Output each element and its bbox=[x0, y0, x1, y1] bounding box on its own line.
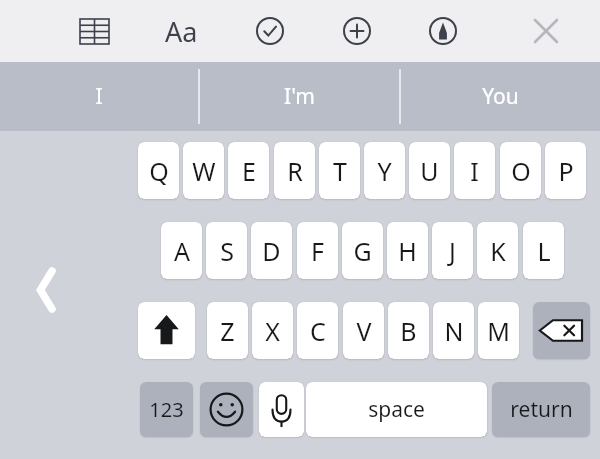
button[interactable]: Close bbox=[522, 13, 570, 49]
button[interactable]: Add bbox=[333, 13, 381, 49]
button[interactable]: E bbox=[228, 142, 269, 199]
staticText: O bbox=[511, 154, 531, 188]
button[interactable]: T bbox=[319, 142, 360, 199]
button[interactable]: Insert table bbox=[68, 13, 120, 49]
staticText: 123 bbox=[149, 396, 184, 423]
staticText: Q bbox=[149, 154, 169, 188]
staticText: I bbox=[470, 154, 479, 188]
button[interactable]: U bbox=[409, 142, 450, 199]
staticText: L bbox=[537, 234, 551, 268]
button[interactable]: I'm bbox=[200, 62, 399, 131]
staticText: I'm bbox=[284, 82, 315, 111]
button[interactable]: Z bbox=[207, 302, 248, 359]
button[interactable]: Dictate bbox=[259, 382, 304, 437]
staticText: N bbox=[444, 314, 464, 348]
button[interactable]: I bbox=[454, 142, 495, 199]
button[interactable]: D bbox=[251, 222, 292, 279]
button[interactable]: L bbox=[523, 222, 564, 279]
button[interactable]: I bbox=[0, 62, 198, 131]
button[interactable]: Backspace bbox=[533, 302, 590, 359]
button[interactable]: 123 bbox=[140, 382, 193, 437]
staticText: F bbox=[311, 234, 324, 268]
button[interactable]: Shift bbox=[138, 302, 195, 359]
staticText: E bbox=[242, 154, 256, 188]
button[interactable]: A bbox=[161, 222, 202, 279]
staticText: Y bbox=[377, 154, 392, 188]
button[interactable]: Done bbox=[246, 13, 294, 49]
staticText: S bbox=[220, 234, 234, 268]
staticText: K bbox=[490, 234, 506, 268]
staticText: A bbox=[174, 234, 190, 268]
button[interactable]: P bbox=[545, 142, 586, 199]
button[interactable]: Y bbox=[364, 142, 405, 199]
button[interactable]: space bbox=[306, 382, 487, 437]
button[interactable]: Collapse keyboard bbox=[24, 257, 68, 323]
staticText: M bbox=[487, 314, 510, 348]
staticText: I bbox=[95, 82, 103, 111]
staticText: P bbox=[558, 154, 574, 188]
staticText: H bbox=[398, 234, 417, 268]
button[interactable]: O bbox=[500, 142, 541, 199]
staticText: C bbox=[310, 314, 326, 348]
button[interactable]: X bbox=[252, 302, 293, 359]
staticText: R bbox=[287, 154, 303, 188]
staticText: You bbox=[482, 82, 519, 111]
staticText: return bbox=[510, 395, 573, 424]
button[interactable]: Q bbox=[138, 142, 179, 199]
button[interactable]: Aa bbox=[152, 13, 210, 49]
button[interactable]: V bbox=[343, 302, 384, 359]
button[interactable]: Markup bbox=[419, 13, 467, 49]
button[interactable]: return bbox=[492, 382, 590, 437]
button[interactable]: Emoji bbox=[200, 382, 253, 437]
button[interactable]: R bbox=[274, 142, 315, 199]
button[interactable]: J bbox=[432, 222, 473, 279]
button[interactable]: G bbox=[342, 222, 383, 279]
button[interactable]: C bbox=[297, 302, 338, 359]
button[interactable]: W bbox=[183, 142, 224, 199]
button[interactable]: You bbox=[401, 62, 600, 131]
button[interactable]: H bbox=[387, 222, 428, 279]
button[interactable]: M bbox=[478, 302, 519, 359]
staticText: Aa bbox=[165, 13, 198, 49]
button[interactable]: F bbox=[297, 222, 338, 279]
staticText: G bbox=[353, 234, 372, 268]
button[interactable]: S bbox=[206, 222, 247, 279]
staticText: D bbox=[262, 234, 281, 268]
staticText: B bbox=[400, 314, 417, 348]
staticText: space bbox=[368, 395, 425, 424]
staticText: X bbox=[265, 314, 280, 348]
staticText: U bbox=[420, 154, 439, 188]
staticText: J bbox=[449, 234, 456, 268]
button[interactable]: K bbox=[477, 222, 518, 279]
button[interactable]: N bbox=[433, 302, 474, 359]
staticText: Z bbox=[220, 314, 235, 348]
staticText: V bbox=[356, 314, 372, 348]
staticText: T bbox=[333, 154, 347, 188]
button[interactable]: B bbox=[388, 302, 429, 359]
staticText: W bbox=[192, 154, 216, 188]
